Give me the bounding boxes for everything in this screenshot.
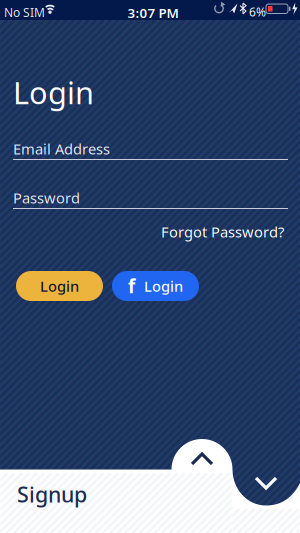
staticText: Signup — [17, 480, 87, 508]
staticText: No SIM — [4, 4, 45, 20]
button[interactable]: Login with Facebook — [112, 271, 199, 301]
staticText: Forgot Password? — [161, 222, 284, 241]
button[interactable]: Password — [13, 188, 288, 209]
button[interactable]: Expand login — [182, 451, 222, 469]
staticText: f — [128, 274, 135, 298]
button[interactable]: Forgot Password? — [161, 222, 284, 241]
staticText: Password — [13, 188, 80, 207]
staticText: Login — [144, 276, 183, 296]
staticText: Login — [13, 72, 94, 113]
staticText: 6% — [249, 4, 266, 20]
button[interactable]: Collapse signup — [246, 475, 286, 493]
button[interactable]: Email Address — [13, 139, 288, 160]
staticText: 3:07 PM — [127, 4, 178, 22]
staticText: Login — [40, 276, 79, 296]
staticText: Email Address — [13, 139, 110, 158]
button[interactable]: Login — [16, 271, 103, 301]
button[interactable]: Signup — [17, 480, 87, 508]
